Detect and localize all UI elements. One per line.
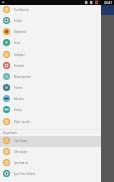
staticText: Ultra Sport [14, 150, 28, 154]
staticText: Hentbol [14, 64, 24, 68]
staticText: Tenis [14, 41, 21, 45]
staticText: Futbol [14, 19, 22, 23]
button[interactable]: Futbol [0, 15, 101, 26]
button[interactable]: Tenis [0, 37, 101, 48]
staticText: Diğer Sporlar [14, 120, 31, 124]
other: Status bar [0, 0, 114, 5]
button[interactable]: Hentbol [0, 60, 101, 71]
staticText: Hokey [14, 108, 22, 112]
button[interactable]: Spor Toto Tahmin [0, 168, 101, 179]
staticText: Canlı Sport [14, 139, 28, 143]
button[interactable]: Ultra Sport [0, 146, 101, 157]
staticText: Motorsporları [14, 75, 31, 79]
button[interactable]: Yüzme [0, 82, 101, 93]
staticText: Spor Toto Tahmin [14, 172, 36, 176]
button[interactable]: Sporlara ait [0, 157, 101, 168]
button[interactable]: Canlı Sport [0, 135, 101, 146]
button[interactable]: Diğer Sporlar [0, 116, 101, 127]
button[interactable]: Tüm Sporlar [0, 4, 101, 15]
staticText: Voleybol [14, 53, 25, 57]
staticText: Sporlara ait [14, 161, 28, 165]
button[interactable]: Motorsporları [0, 71, 101, 82]
staticText: Atletizm [14, 97, 24, 101]
staticText: Yüzme [14, 86, 23, 90]
button[interactable]: Hokey [0, 104, 101, 115]
staticText: Tüm Sporlar [14, 8, 29, 12]
button[interactable]: Atletizm [0, 93, 101, 104]
staticText: Kuponlarım [3, 131, 18, 135]
button[interactable]: Voleybol [0, 49, 101, 60]
staticText: Basketbol [14, 30, 27, 34]
staticText: 23:41 [104, 1, 113, 5]
button[interactable]: Basketbol [0, 26, 101, 37]
